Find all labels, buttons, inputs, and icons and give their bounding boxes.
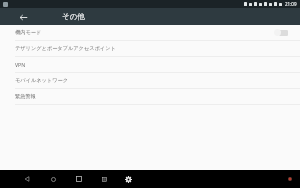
button[interactable]: モバイルネットワーク [0,73,300,89]
button[interactable]: Menu [99,174,109,184]
button[interactable]: 緊急警報 [0,89,300,105]
button[interactable]: VPN [0,57,300,73]
staticText: VPN [15,61,26,68]
button[interactable]: 機内モード [0,25,300,41]
staticText: 緊急警報 [15,93,36,100]
staticText: 機内モード [15,29,42,36]
button[interactable]: Back [16,10,30,24]
staticText: その他 [62,12,85,21]
button[interactable]: Back [22,174,32,184]
button[interactable]: テザリングとポータブルアクセスポイント [0,41,300,57]
button[interactable]: Settings [123,174,133,184]
button[interactable]: Recents [74,174,84,184]
staticText: 21:09 [285,1,297,7]
button[interactable]: Home [48,174,58,184]
staticText: テザリングとポータブルアクセスポイント [15,45,116,52]
staticText: モバイルネットワーク [15,77,68,84]
button[interactable]: Notification [288,177,292,181]
